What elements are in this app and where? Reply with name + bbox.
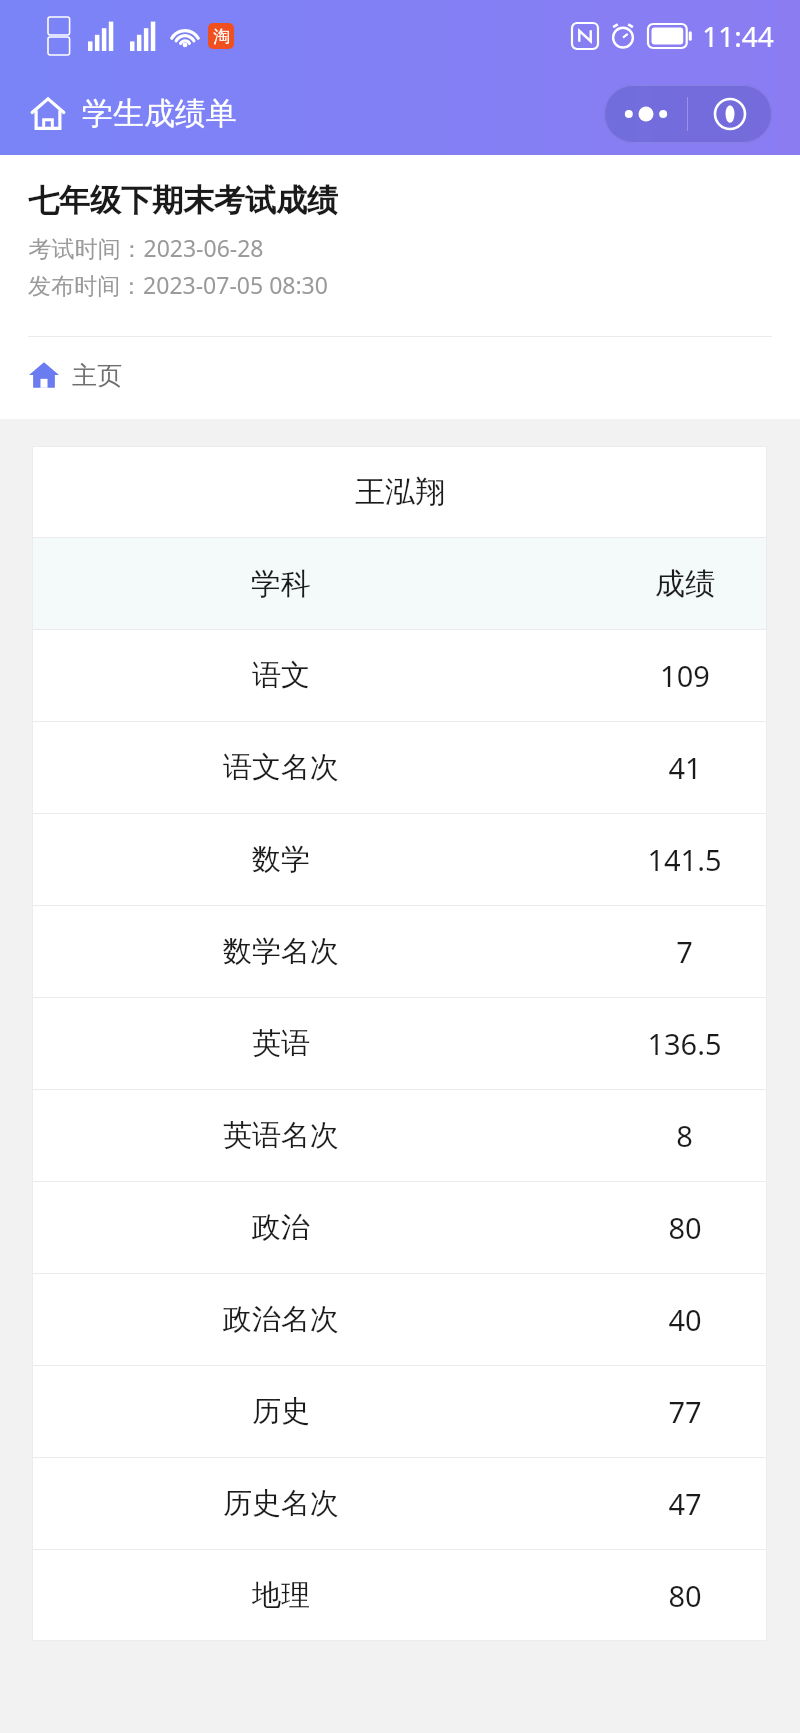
- staticText: 历史名次: [223, 1485, 339, 1522]
- button[interactable]: Menu: [604, 85, 772, 143]
- button[interactable]: 历史名次: [32, 1458, 767, 1549]
- staticText: 学科: [251, 565, 311, 603]
- button[interactable]: 语文: [32, 630, 767, 721]
- staticText: 80: [668, 1576, 702, 1615]
- button[interactable]: 数学: [32, 814, 767, 905]
- staticText: 政治名次: [223, 1301, 339, 1338]
- staticText: 40: [668, 1300, 702, 1339]
- button[interactable]: 政治名次: [32, 1274, 767, 1365]
- staticText: 英语名次: [223, 1117, 339, 1154]
- button[interactable]: 政治: [32, 1182, 767, 1273]
- staticText: 王泓翔: [355, 473, 445, 511]
- staticText: 41: [668, 748, 702, 787]
- button[interactable]: Home: [0, 88, 247, 139]
- button[interactable]: 英语: [32, 998, 767, 1089]
- staticText: 80: [668, 1208, 702, 1247]
- staticText: 8: [676, 1116, 693, 1155]
- staticText: 77: [668, 1392, 702, 1431]
- staticText: 七年级下期末考试成绩: [28, 181, 338, 220]
- button[interactable]: 学科: [32, 538, 767, 629]
- staticText: 地理: [252, 1577, 310, 1614]
- staticText: 11:44: [702, 17, 774, 55]
- staticText: 历史: [252, 1393, 310, 1430]
- button[interactable]: 数学名次: [32, 906, 767, 997]
- staticText: 主页: [72, 360, 122, 391]
- button[interactable]: 英语名次: [32, 1090, 767, 1181]
- staticText: 语文: [252, 657, 310, 694]
- staticText: 136.5: [647, 1024, 722, 1063]
- staticText: 数学: [252, 841, 310, 878]
- staticText: 学生成绩单: [82, 94, 237, 133]
- button[interactable]: 语文名次: [32, 722, 767, 813]
- button[interactable]: 历史: [32, 1366, 767, 1457]
- button[interactable]: 地理: [32, 1550, 767, 1641]
- staticText: 成绩: [655, 565, 715, 603]
- button[interactable]: 主页: [0, 337, 800, 413]
- staticText: 考试时间：2023-06-28: [28, 232, 264, 263]
- staticText: 发布时间：2023-07-05 08:30: [28, 269, 328, 300]
- staticText: 109: [660, 656, 710, 695]
- staticText: 141.5: [647, 840, 722, 879]
- other: Home: [30, 96, 66, 132]
- staticText: 政治: [252, 1209, 310, 1246]
- staticText: 47: [668, 1484, 702, 1523]
- staticText: 淘: [213, 26, 230, 47]
- staticText: 语文名次: [223, 749, 339, 786]
- staticText: 英语: [252, 1025, 310, 1062]
- staticText: 数学名次: [223, 933, 339, 970]
- staticText: 7: [676, 932, 693, 971]
